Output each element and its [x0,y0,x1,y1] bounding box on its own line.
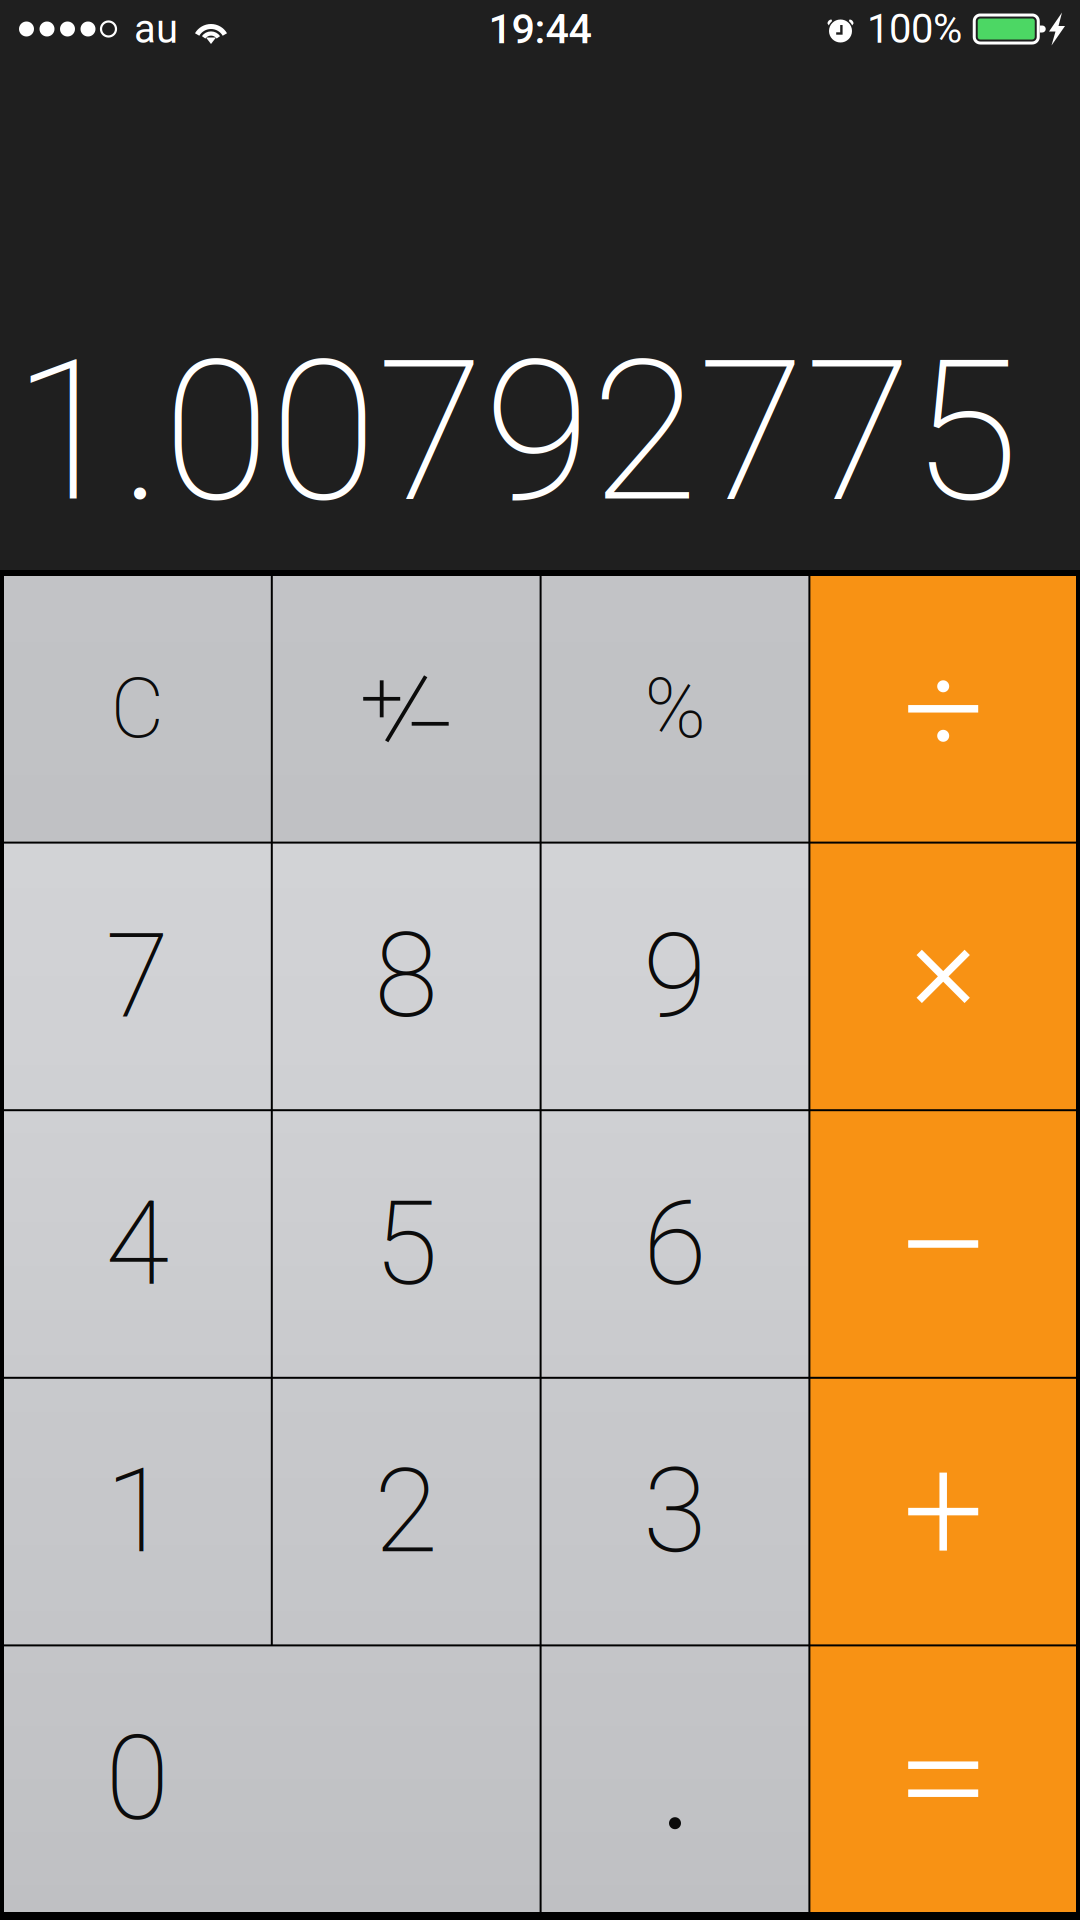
button[interactable]: C [4,576,271,842]
button[interactable]: 6 [542,1111,808,1377]
button[interactable]: 3 [542,1379,808,1644]
staticText: 8 [374,908,438,1044]
staticText: 5 [374,1176,438,1312]
staticText: 1.00792775 [13,318,1019,546]
button[interactable]: Plus [810,1379,1076,1644]
staticText: C [110,660,164,757]
staticText: au [134,6,178,52]
staticText: 0 [105,1711,169,1847]
button[interactable]: Equals [810,1646,1076,1912]
button[interactable]: Decimal point [542,1646,808,1912]
staticText: 2 [374,1444,438,1579]
button[interactable]: 1 [4,1379,271,1644]
button[interactable]: % [542,576,808,842]
button[interactable]: 0 [4,1646,540,1912]
button[interactable]: Multiply [810,844,1076,1109]
staticText: 9 [643,908,707,1044]
staticText: 3 [643,1444,707,1579]
button[interactable]: 2 [273,1379,540,1644]
button[interactable]: 7 [4,844,271,1109]
button[interactable]: Minus [810,1111,1076,1377]
staticText: 19:44 [488,5,591,53]
button[interactable]: 9 [542,844,808,1109]
staticText: 7 [105,908,169,1044]
button[interactable]: 8 [273,844,540,1109]
staticText: 4 [105,1176,169,1312]
staticText: 1 [105,1444,169,1579]
button[interactable]: Divide [810,576,1076,842]
button[interactable]: Plus minus [273,576,540,842]
staticText: % [644,660,705,757]
staticText: 100% [867,6,962,52]
button[interactable]: 4 [4,1111,271,1377]
button[interactable]: 5 [273,1111,540,1377]
staticText: 6 [643,1176,707,1312]
